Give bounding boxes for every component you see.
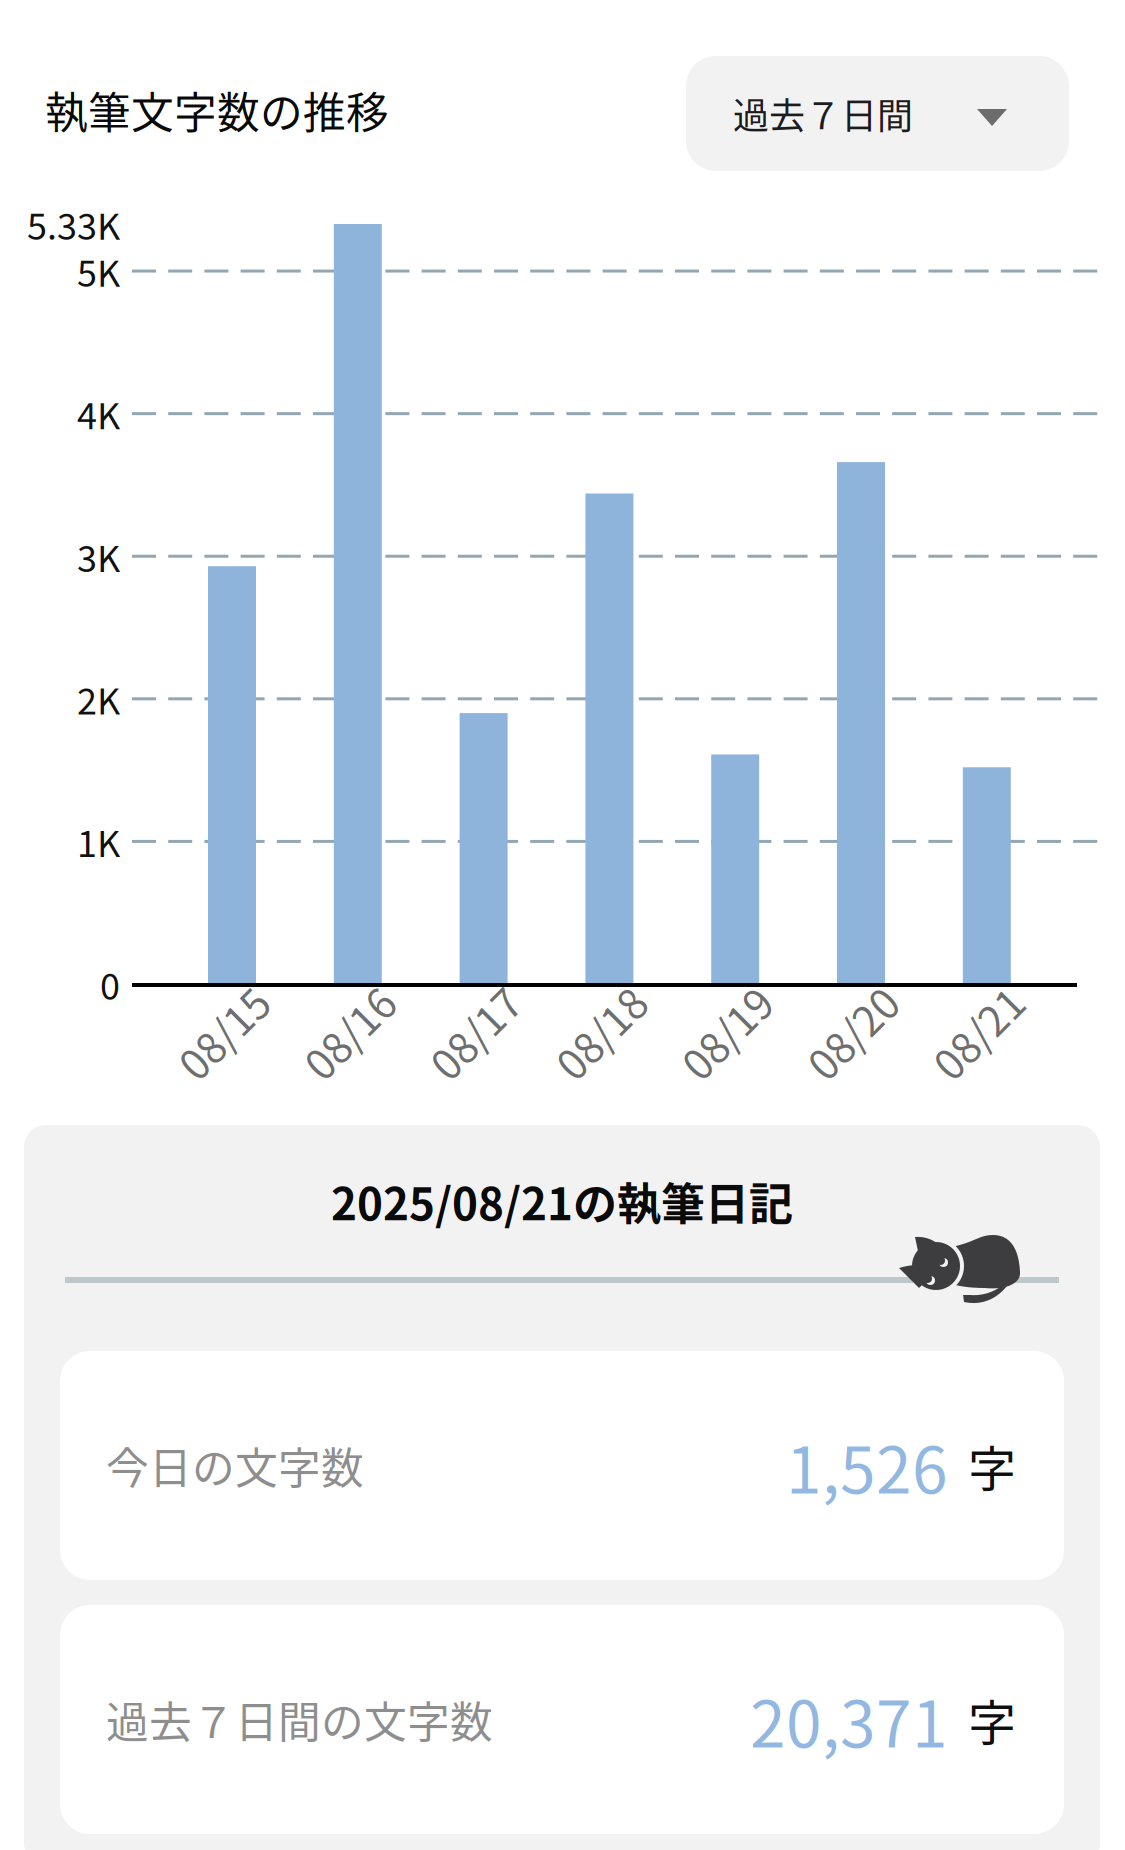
button[interactable]: 今日の文字数 bbox=[60, 1351, 1064, 1580]
staticText: 字 bbox=[968, 1685, 1016, 1754]
staticText: 字 bbox=[968, 1431, 1016, 1500]
button[interactable]: 過去７日間 bbox=[686, 56, 1069, 171]
staticText: 1,526 bbox=[786, 1419, 948, 1512]
staticText: 3K bbox=[77, 530, 120, 582]
staticText: 08/19 bbox=[672, 1002, 780, 1062]
staticText: 執筆文字数の推移 bbox=[45, 79, 389, 141]
staticText: 5K bbox=[77, 245, 120, 297]
staticText: 4K bbox=[77, 388, 120, 440]
staticText: 5.33K bbox=[27, 198, 120, 250]
staticText: 今日の文字数 bbox=[106, 1435, 364, 1496]
staticText: 08/18 bbox=[546, 1002, 654, 1062]
staticText: 2025/08/21の執筆日記 bbox=[331, 1169, 793, 1233]
staticText: 08/16 bbox=[295, 1002, 403, 1062]
staticText: 2K bbox=[77, 673, 120, 725]
staticText: 1K bbox=[77, 815, 120, 867]
staticText: 20,371 bbox=[750, 1673, 948, 1766]
staticText: 08/20 bbox=[798, 1002, 906, 1062]
staticText: 過去７日間の文字数 bbox=[106, 1689, 493, 1750]
staticText: 08/15 bbox=[169, 1002, 277, 1062]
staticText: 0 bbox=[100, 958, 120, 1010]
staticText: 過去７日間 bbox=[733, 87, 913, 139]
staticText: 08/21 bbox=[924, 1002, 1032, 1062]
button[interactable]: 過去７日間の文字数 bbox=[60, 1605, 1064, 1834]
staticText: 08/17 bbox=[421, 1002, 529, 1062]
